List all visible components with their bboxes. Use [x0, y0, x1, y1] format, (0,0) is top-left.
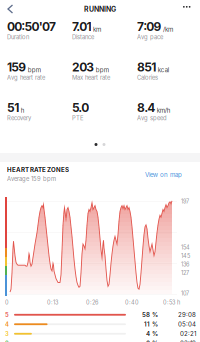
staticText: 7.01: [72, 19, 91, 34]
staticText: /km: [163, 26, 173, 33]
staticText: RUNNING: [84, 5, 116, 13]
staticText: bpm: [28, 66, 41, 74]
staticText: 0:26: [86, 299, 98, 306]
staticText: 02:21: [180, 330, 196, 337]
staticText: 2: [5, 340, 9, 342]
staticText: kcal: [158, 66, 169, 74]
staticText: 5.0: [72, 100, 89, 115]
staticText: bpm: [96, 66, 109, 74]
staticText: km: [93, 26, 101, 33]
staticText: 6 %: [146, 339, 158, 342]
staticText: PTE: [72, 114, 84, 122]
staticText: 0:53 h: [163, 299, 180, 306]
staticText: 107: [181, 290, 189, 297]
staticText: 29:08: [178, 311, 196, 318]
staticText: Average 159 bpm: [7, 175, 56, 182]
staticText: 851: [137, 60, 156, 74]
staticText: 03:18: [180, 339, 196, 342]
staticText: 0:13: [47, 299, 58, 306]
staticText: h: [21, 107, 25, 114]
staticText: 58 %: [142, 311, 158, 318]
staticText: Calories: [137, 74, 158, 81]
staticText: 7:09: [137, 19, 161, 34]
staticText: Avg pace: [137, 33, 163, 41]
staticText: Max heart rate: [72, 74, 110, 81]
staticText: km/h: [157, 107, 171, 114]
staticText: Duration: [7, 33, 29, 41]
staticText: 127: [181, 269, 189, 276]
staticText: 197: [181, 198, 189, 205]
staticText: 11 %: [144, 320, 158, 328]
staticText: 0:40: [125, 299, 139, 306]
staticText: 8.4: [137, 100, 155, 115]
staticText: 154: [181, 244, 190, 251]
staticText: 3: [5, 330, 9, 337]
staticText: 05:04: [178, 320, 196, 328]
staticText: View on map: [145, 171, 182, 178]
staticText: 5: [5, 311, 9, 318]
staticText: Distance: [72, 33, 94, 41]
staticText: 4: [5, 321, 9, 328]
staticText: 159: [7, 60, 26, 74]
staticText: HEART RATE ZONES: [7, 166, 69, 173]
button[interactable]: Back: [3, 0, 17, 18]
staticText: 136: [181, 261, 189, 268]
staticText: 203: [72, 60, 94, 74]
staticText: Recovery: [7, 114, 31, 122]
staticText: 4 %: [146, 330, 158, 337]
staticText: 145: [181, 252, 190, 259]
staticText: 51: [7, 100, 19, 115]
staticText: Avg speed: [137, 114, 167, 122]
staticText: 0: [5, 299, 9, 306]
button[interactable]: More options: [178, 1, 195, 13]
button[interactable]: View on map: [142, 168, 185, 181]
staticText: 00:50'07: [7, 19, 56, 34]
staticText: Avg heart rate: [7, 74, 45, 81]
